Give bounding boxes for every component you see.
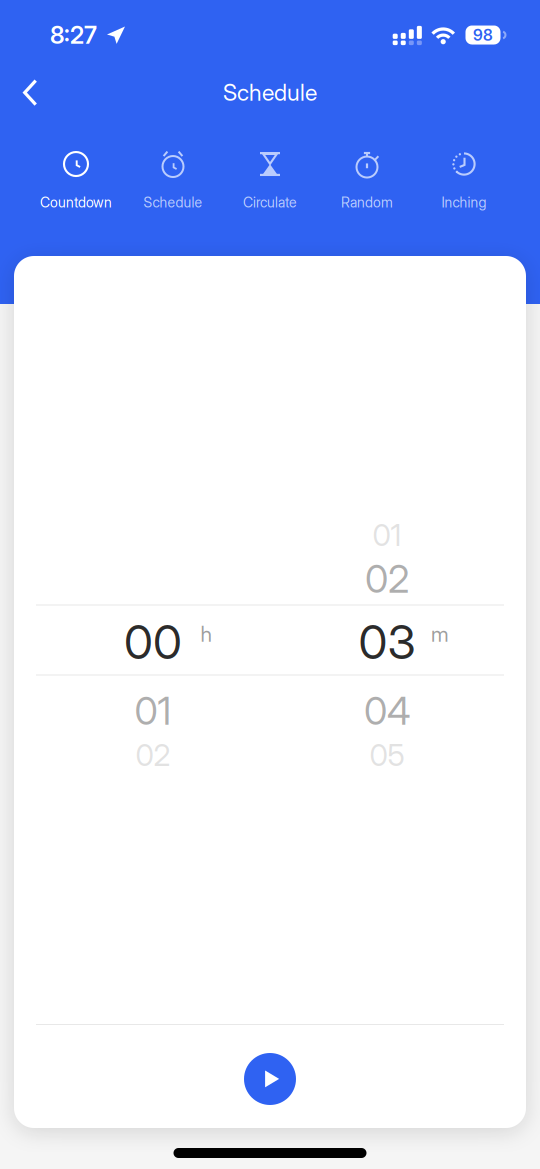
staticText: 04: [364, 688, 410, 734]
staticText: 03: [358, 614, 415, 670]
staticText: Countdown: [40, 194, 112, 211]
staticText: h: [200, 621, 211, 647]
button[interactable]: Schedule: [124, 143, 221, 217]
staticText: Schedule: [143, 194, 202, 211]
button[interactable]: Inching: [415, 143, 512, 217]
staticText: 01: [134, 688, 171, 734]
staticText: 00: [124, 614, 182, 670]
button[interactable]: Random: [318, 143, 415, 217]
staticText: Random: [341, 194, 393, 211]
button[interactable]: Start countdown: [239, 1048, 301, 1110]
staticText: m: [431, 621, 449, 647]
button[interactable]: Circulate: [221, 143, 318, 217]
staticText: 98: [473, 25, 493, 45]
staticText: Circulate: [243, 194, 297, 211]
button[interactable]: Back: [6, 68, 54, 116]
staticText: Inching: [441, 194, 486, 211]
staticText: 05: [369, 737, 404, 773]
button[interactable]: Countdown: [27, 143, 124, 217]
staticText: 02: [135, 737, 170, 773]
staticText: Schedule: [223, 79, 317, 106]
staticText: 01: [372, 517, 401, 553]
staticText: 8:27: [50, 20, 97, 49]
staticText: 02: [365, 556, 409, 602]
